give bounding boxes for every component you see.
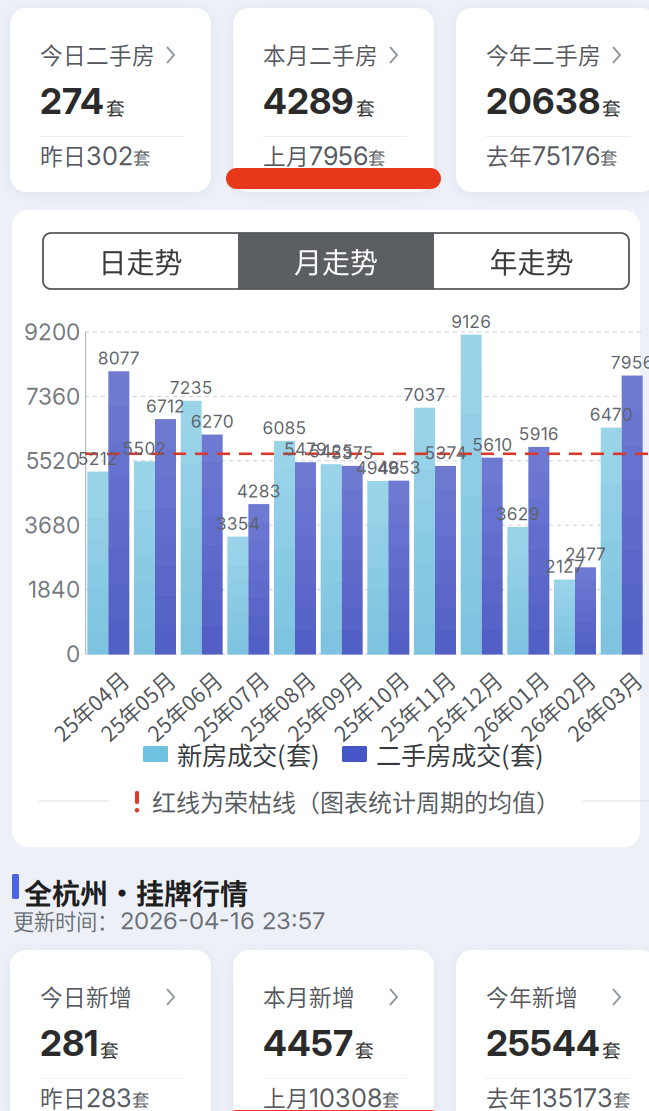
staticText: 25年09月 bbox=[279, 691, 369, 721]
staticText: 6712 bbox=[146, 396, 185, 417]
staticText: 25年11月 bbox=[372, 691, 462, 721]
staticText: 本月新增 bbox=[263, 980, 355, 1012]
staticText: 套 bbox=[368, 144, 385, 169]
staticText: 5375 bbox=[331, 442, 374, 463]
staticText: 套 bbox=[133, 144, 150, 169]
staticText: 套 bbox=[355, 1036, 374, 1063]
staticText: 上月 bbox=[263, 1081, 309, 1111]
staticText: 套 bbox=[602, 94, 621, 121]
staticText: 4289 bbox=[263, 79, 354, 123]
staticText: 7235 bbox=[170, 377, 213, 398]
staticText: 25年10月 bbox=[325, 691, 415, 721]
button[interactable]: 今日二手房 bbox=[10, 8, 211, 192]
staticText: 全杭州·挂牌行情 bbox=[24, 872, 248, 912]
staticText: 日走势 bbox=[98, 241, 182, 281]
staticText: 4283 bbox=[237, 481, 281, 502]
staticText: 6270 bbox=[191, 411, 234, 432]
staticText: 套 bbox=[100, 1036, 119, 1063]
button[interactable]: 月走势 bbox=[238, 233, 434, 289]
staticText: 25544 bbox=[486, 1021, 600, 1065]
staticText: 7037 bbox=[403, 384, 445, 405]
staticText: 0 bbox=[66, 640, 80, 668]
staticText: 25年06月 bbox=[139, 691, 229, 721]
staticText: 26年01月 bbox=[465, 691, 555, 721]
staticText: 25年04月 bbox=[45, 691, 135, 721]
staticText: 红线为荣枯线（图表统计周期的均值） bbox=[152, 784, 560, 818]
staticText: 月走势 bbox=[294, 241, 378, 281]
staticText: 套 bbox=[356, 94, 375, 121]
staticText: 7956 bbox=[309, 141, 368, 171]
staticText: 5212 bbox=[78, 448, 118, 469]
staticText: 4457 bbox=[263, 1021, 353, 1065]
staticText: 5502 bbox=[122, 438, 166, 459]
staticText: 7360 bbox=[26, 383, 80, 410]
button[interactable]: 日走势 bbox=[43, 233, 238, 289]
button[interactable]: 今年二手房 bbox=[456, 8, 649, 192]
staticText: 6470 bbox=[590, 404, 633, 425]
staticText: 5610 bbox=[472, 434, 512, 455]
staticText: 本月二手房 bbox=[263, 38, 378, 70]
staticText: 昨日 bbox=[40, 139, 86, 171]
staticText: 8077 bbox=[98, 348, 140, 369]
staticText: 5479 bbox=[284, 439, 327, 460]
staticText: 年走势 bbox=[489, 241, 573, 281]
staticText: 套 bbox=[600, 144, 617, 169]
staticText: 20638 bbox=[486, 79, 600, 123]
staticText: 26年02月 bbox=[512, 691, 602, 721]
button[interactable]: 今日新增 bbox=[10, 950, 211, 1111]
staticText: 5425 bbox=[309, 441, 353, 462]
staticText: 281 bbox=[40, 1021, 98, 1065]
staticText: 9126 bbox=[451, 311, 491, 332]
staticText: 2127 bbox=[545, 556, 584, 577]
staticText: 75176 bbox=[532, 141, 600, 171]
staticText: 135173 bbox=[532, 1083, 613, 1111]
staticText: 套 bbox=[602, 1036, 621, 1063]
staticText: 4953 bbox=[377, 457, 421, 478]
staticText: 5520 bbox=[26, 447, 80, 474]
button[interactable]: 本月二手房 bbox=[233, 8, 434, 192]
staticText: 283 bbox=[86, 1083, 132, 1111]
staticText: 新房成交(套) bbox=[177, 736, 320, 772]
staticText: 1840 bbox=[28, 576, 80, 603]
staticText: 302 bbox=[86, 141, 133, 171]
staticText: 3629 bbox=[496, 503, 540, 524]
staticText: 5374 bbox=[424, 442, 466, 463]
staticText: 7956 bbox=[611, 352, 649, 373]
button[interactable]: 本月新增 bbox=[233, 950, 434, 1111]
staticText: 套 bbox=[106, 94, 125, 121]
staticText: 昨日 bbox=[40, 1081, 86, 1111]
staticText: 5916 bbox=[519, 423, 559, 444]
button[interactable]: 年走势 bbox=[434, 233, 629, 289]
staticText: 25年08月 bbox=[232, 691, 322, 721]
staticText: 今年新增 bbox=[486, 980, 578, 1012]
staticText: 今年二手房 bbox=[486, 38, 601, 70]
staticText: 今日二手房 bbox=[40, 38, 155, 70]
staticText: 套 bbox=[132, 1086, 149, 1111]
staticText: 套 bbox=[613, 1086, 630, 1111]
staticText: 25年07月 bbox=[185, 691, 275, 721]
staticText: 9200 bbox=[24, 318, 80, 346]
staticText: 2026-04-16 23:57 bbox=[120, 906, 325, 935]
staticText: 上月 bbox=[263, 139, 309, 171]
staticText: 套 bbox=[382, 1086, 399, 1111]
staticText: 6085 bbox=[262, 417, 306, 438]
button[interactable]: 今年新增 bbox=[456, 950, 649, 1111]
staticText: 25年05月 bbox=[92, 691, 182, 721]
staticText: 274 bbox=[40, 79, 104, 123]
staticText: 更新时间： bbox=[13, 905, 118, 936]
staticText: 26年03月 bbox=[559, 691, 649, 721]
staticText: 3354 bbox=[216, 513, 260, 534]
staticText: 10308 bbox=[309, 1083, 382, 1111]
staticText: 2477 bbox=[565, 544, 606, 565]
staticText: 今日新增 bbox=[40, 980, 132, 1012]
staticText: 3680 bbox=[24, 511, 80, 539]
staticText: 去年 bbox=[486, 139, 532, 171]
staticText: 4946 bbox=[356, 457, 400, 478]
staticText: 25年12月 bbox=[419, 691, 509, 721]
staticText: 去年 bbox=[486, 1081, 532, 1111]
staticText: 二手房成交(套) bbox=[376, 736, 544, 772]
